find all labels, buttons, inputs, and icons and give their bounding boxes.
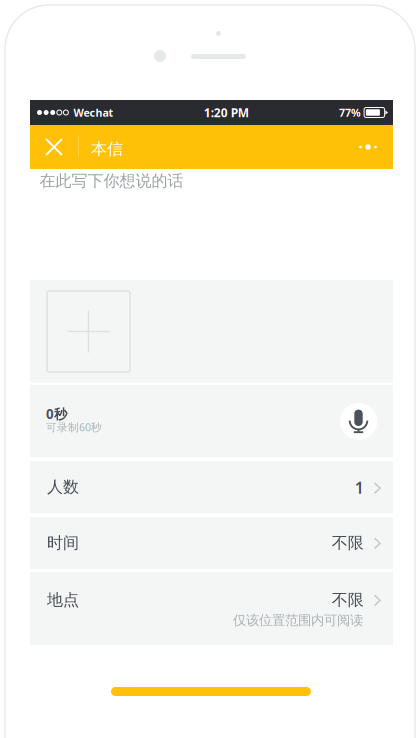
button[interactable]: 0秒 (30, 385, 393, 457)
staticText: 0秒 (46, 405, 67, 423)
button[interactable]: Send (111, 687, 311, 696)
staticText: 在此写下你想说的话 (39, 171, 183, 191)
staticText: 1 (355, 477, 364, 498)
button[interactable]: Close (38, 125, 70, 169)
button[interactable]: Add attachment (47, 291, 130, 372)
button[interactable]: 人数 (30, 461, 393, 513)
staticText: 人数 (47, 477, 79, 497)
staticText: 时间 (47, 533, 79, 553)
staticText: 可录制60秒 (46, 420, 102, 434)
staticText: 地点 (47, 590, 79, 610)
staticText: Wechat (73, 105, 113, 120)
staticText: 仅该位置范围内可阅读 (233, 612, 363, 628)
staticText: 1:20 PM (204, 104, 249, 120)
staticText: 不限 (332, 590, 364, 610)
staticText: 本信 (91, 139, 123, 159)
button[interactable]: More options (346, 125, 390, 169)
button[interactable]: 时间 (30, 517, 393, 569)
staticText: 77% (339, 105, 361, 120)
staticText: 不限 (332, 533, 364, 553)
button[interactable]: 地点 (30, 572, 393, 645)
